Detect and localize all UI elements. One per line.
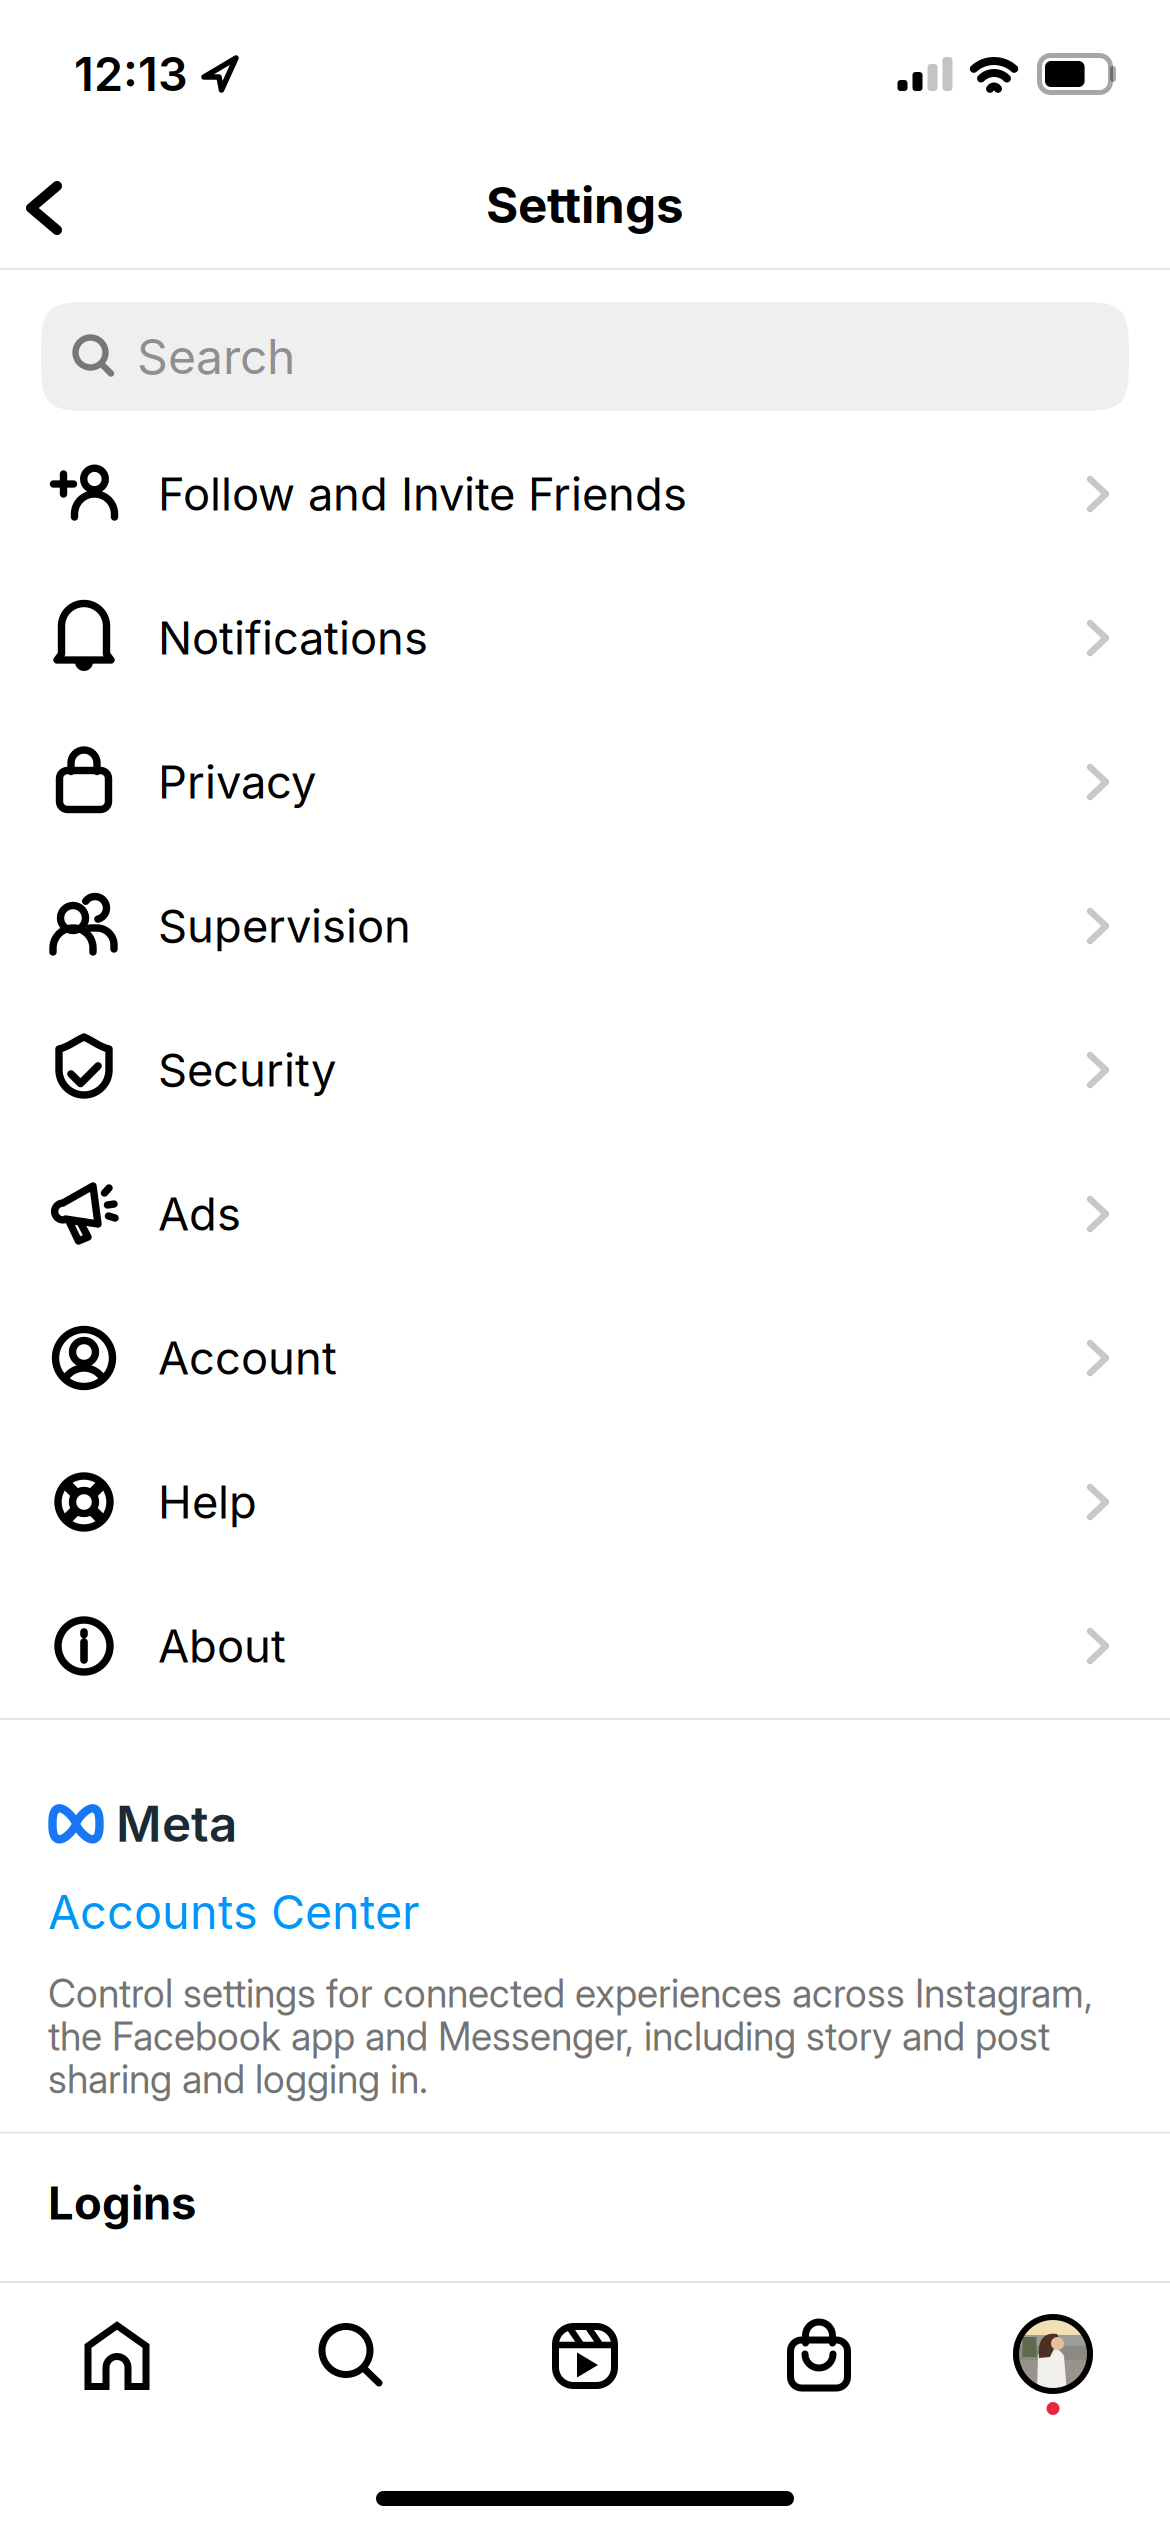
staticText: Help bbox=[158, 1475, 257, 1529]
button[interactable]: Ads bbox=[0, 1142, 1170, 1286]
button[interactable]: Back bbox=[0, 153, 88, 263]
staticText: Meta bbox=[116, 1794, 237, 1854]
button[interactable]: About bbox=[0, 1574, 1170, 1718]
staticText: Settings bbox=[486, 175, 684, 235]
button[interactable]: Follow and Invite Friends bbox=[0, 422, 1170, 566]
button[interactable]: Home bbox=[0, 2283, 234, 2429]
staticText: Security bbox=[158, 1043, 336, 1097]
staticText: Control settings for connected experienc… bbox=[48, 1970, 1093, 2103]
button[interactable]: Supervision bbox=[0, 854, 1170, 998]
staticText: Follow and Invite Friends bbox=[158, 467, 687, 521]
staticText: Notifications bbox=[158, 611, 428, 665]
button[interactable]: Account bbox=[0, 1286, 1170, 1430]
staticText: Supervision bbox=[158, 899, 411, 953]
button[interactable]: Reels bbox=[468, 2283, 702, 2429]
staticText: Accounts Center bbox=[48, 1884, 420, 1940]
button[interactable]: Security bbox=[0, 998, 1170, 1142]
button[interactable]: Search bbox=[41, 302, 1129, 411]
button[interactable]: Profile bbox=[936, 2283, 1170, 2429]
staticText: Ads bbox=[158, 1187, 241, 1241]
button[interactable]: Search bbox=[234, 2283, 468, 2429]
staticText: Logins bbox=[48, 2175, 196, 2230]
button[interactable]: Privacy bbox=[0, 710, 1170, 854]
staticText: Search bbox=[137, 327, 295, 386]
staticText: Privacy bbox=[158, 755, 316, 809]
staticText: Account bbox=[158, 1331, 337, 1385]
button[interactable]: Shop bbox=[702, 2283, 936, 2429]
staticText: 12:13 bbox=[74, 46, 188, 102]
staticText: About bbox=[158, 1619, 286, 1673]
button[interactable]: Notifications bbox=[0, 566, 1170, 710]
button[interactable]: Help bbox=[0, 1430, 1170, 1574]
button[interactable]: Accounts Center bbox=[48, 1854, 420, 1946]
